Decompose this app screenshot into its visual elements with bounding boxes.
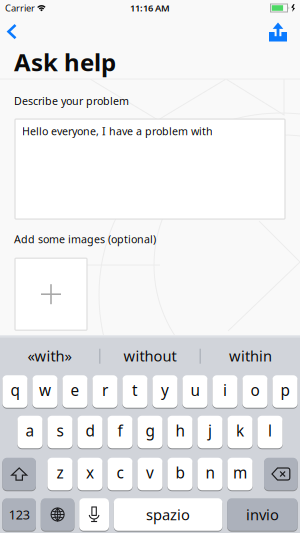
button[interactable]: z [47,457,73,491]
button[interactable]: within [201,336,300,373]
staticText: p [280,380,289,400]
button[interactable]: e [62,375,88,408]
staticText: z [56,462,63,483]
button[interactable]: Back [6,23,24,41]
staticText: v [146,462,154,483]
button[interactable]: q [2,375,28,408]
staticText: n [205,462,214,483]
button[interactable]: i [212,375,238,408]
button[interactable]: m [227,457,253,491]
staticText: within [229,346,272,366]
button[interactable]: p [272,375,298,408]
button[interactable]: j [197,415,223,449]
staticText: g [145,420,154,441]
staticText: e [70,380,79,400]
button[interactable]: s [47,415,73,449]
button[interactable]: w [32,375,58,408]
staticText: Add some images (optional) [14,232,156,246]
staticText: j [208,420,212,441]
staticText: Ask help [14,46,116,78]
staticText: o [250,380,259,400]
staticText: q [10,380,19,400]
staticText: 11:16 AM [130,2,170,14]
button[interactable]: c [107,457,133,491]
button[interactable]: u [182,375,208,408]
button[interactable]: v [137,457,163,491]
button[interactable]: a [17,415,43,449]
button[interactable]: «with» [0,336,99,373]
staticText: k [236,420,244,441]
staticText: without [123,346,176,366]
button[interactable]: l [257,415,283,449]
button[interactable]: y [152,375,178,408]
button[interactable]: o [242,375,268,408]
staticText: Carrier [5,2,35,14]
staticText: w [39,380,51,400]
button[interactable]: b [167,457,193,491]
staticText: invio [246,504,279,524]
button[interactable]: Shift [2,457,36,491]
button[interactable]: without [100,336,200,373]
button[interactable]: t [122,375,148,408]
button[interactable]: f [107,415,133,449]
staticText: «with» [28,346,72,366]
button[interactable]: Next keyboard [41,498,74,531]
staticText: Hello everyone, I have a problem with [22,124,213,138]
staticText: spazio [146,504,190,524]
staticText: x [86,462,94,483]
button[interactable]: k [227,415,253,449]
button[interactable]: x [77,457,103,491]
staticText: h [175,420,184,441]
staticText: u [190,380,199,400]
staticText: b [175,462,184,483]
button[interactable]: Dictation [79,498,109,531]
button[interactable]: Add image [15,258,87,330]
button[interactable]: Delete [264,457,298,491]
button[interactable]: d [77,415,103,449]
staticText: l [268,420,272,441]
button[interactable]: h [167,415,193,449]
staticText: i [223,380,227,400]
button[interactable]: r [92,375,118,408]
staticText: r [102,380,108,400]
button[interactable]: g [137,415,163,449]
staticText: a [25,420,34,441]
button[interactable]: n [197,457,223,491]
staticText: t [132,380,138,400]
button[interactable]: Numbers [2,498,36,531]
button[interactable]: spazio [114,498,222,531]
button[interactable]: invio [227,498,298,531]
staticText: m [233,462,247,483]
staticText: f [117,420,122,441]
staticText: 123 [9,506,30,523]
staticText: d [85,420,94,441]
button[interactable]: Problem description [15,119,285,219]
staticText: y [161,380,169,400]
staticText: Describe your problem [14,94,129,108]
button[interactable]: Share [269,22,287,41]
staticText: s [56,420,63,441]
staticText: c [116,462,123,483]
